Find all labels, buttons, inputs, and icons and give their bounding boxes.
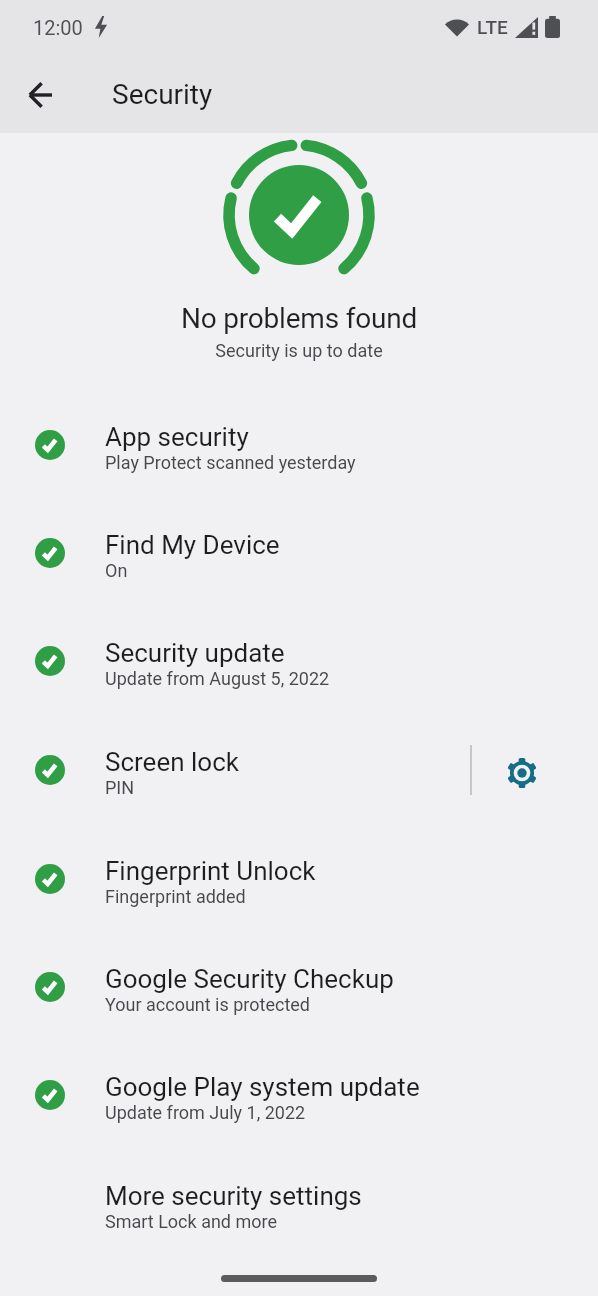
button[interactable]: [507, 758, 537, 788]
button[interactable]: Fingerprint Unlock: [0, 825, 598, 933]
button[interactable]: Security update: [0, 607, 598, 715]
staticText: Fingerprint Unlock: [105, 856, 316, 886]
button[interactable]: Google Security Checkup: [0, 933, 598, 1041]
staticText: No problems found: [0, 302, 598, 335]
staticText: Screen lock: [105, 747, 239, 777]
staticText: Play Protect scanned yesterday: [105, 452, 356, 473]
staticText: Security is up to date: [0, 340, 598, 361]
button[interactable]: Screen lock: [0, 716, 598, 824]
staticText: Your account is protected: [105, 994, 310, 1015]
staticText: 12:00: [33, 16, 83, 39]
staticText: Security: [112, 78, 213, 111]
staticText: PIN: [105, 777, 135, 798]
staticText: Update from July 1, 2022: [105, 1102, 306, 1123]
button[interactable]: Google Play system update: [0, 1041, 598, 1149]
staticText: On: [105, 560, 128, 581]
staticText: Google Play system update: [105, 1072, 420, 1102]
button[interactable]: More security settings: [0, 1150, 598, 1258]
staticText: Smart Lock and more: [105, 1211, 278, 1232]
staticText: More security settings: [105, 1181, 362, 1211]
button[interactable]: Find My Device: [0, 499, 598, 607]
staticText: Find My Device: [105, 530, 280, 560]
staticText: App security: [105, 422, 249, 452]
staticText: Fingerprint added: [105, 886, 246, 907]
button[interactable]: App security: [0, 391, 598, 499]
staticText: Security update: [105, 638, 285, 668]
staticText: Update from August 5, 2022: [105, 668, 330, 689]
button[interactable]: [29, 83, 53, 107]
staticText: LTE: [477, 16, 508, 38]
staticText: Google Security Checkup: [105, 964, 394, 994]
